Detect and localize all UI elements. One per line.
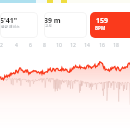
staticText: 고도 (45, 24, 53, 29)
staticText: 8 (43, 42, 46, 49)
staticText: BPM (95, 25, 106, 31)
staticText: 16 (99, 42, 105, 49)
staticText: 5'41" (0, 16, 18, 26)
staticText: 2 (0, 42, 3, 49)
button[interactable]: 159 (90, 12, 130, 38)
staticText: 14 (84, 42, 90, 49)
staticText: 18 (113, 42, 119, 49)
staticText: 평균 페이스 (1, 24, 20, 29)
staticText: 159 (96, 16, 109, 26)
staticText: 10 (56, 42, 62, 49)
staticText: 39 m (44, 16, 61, 26)
staticText: 4 (15, 42, 18, 49)
staticText: 6 (29, 42, 32, 49)
button[interactable]: 5'41" (0, 12, 38, 38)
staticText: 12 (70, 42, 76, 49)
button[interactable]: 39 m (44, 12, 87, 38)
